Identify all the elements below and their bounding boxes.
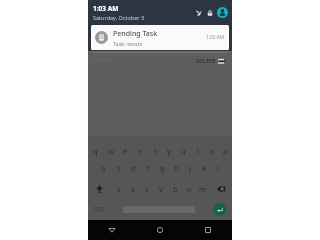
staticText: k xyxy=(202,163,207,173)
staticText: Pending Task xyxy=(113,29,158,39)
staticText: e xyxy=(123,146,128,156)
button[interactable]: Backspace xyxy=(210,178,232,199)
staticText: 1:03 AM xyxy=(93,4,119,13)
staticText: Task: tessts xyxy=(113,40,143,47)
button[interactable]: b xyxy=(168,178,182,199)
staticText: 0 xyxy=(224,141,227,146)
button[interactable]: Enter xyxy=(207,199,232,219)
staticText: h xyxy=(174,163,179,173)
button[interactable]: Recent apps xyxy=(184,220,232,240)
button[interactable]: Pending Task xyxy=(91,25,229,50)
button[interactable]: a xyxy=(96,158,111,178)
button[interactable]: d xyxy=(126,158,141,178)
staticText: o xyxy=(209,146,214,156)
staticText: q xyxy=(93,146,98,156)
staticText: v xyxy=(159,184,163,194)
staticText: g xyxy=(160,163,165,173)
staticText: m xyxy=(199,184,207,194)
button[interactable]: 6 xyxy=(162,138,176,158)
button[interactable]: j xyxy=(183,158,197,178)
staticText: . xyxy=(200,205,202,214)
button[interactable]: x xyxy=(126,178,140,199)
staticText: 9 xyxy=(210,141,213,146)
button[interactable]: 9 xyxy=(204,138,218,158)
staticText: b xyxy=(173,184,178,194)
staticText: j xyxy=(189,163,191,173)
staticText: 8 xyxy=(196,141,199,146)
staticText: 5 xyxy=(154,141,157,146)
staticText: r xyxy=(139,146,143,156)
button[interactable]: 4 xyxy=(133,138,148,158)
staticText: 4 xyxy=(140,141,143,146)
button[interactable]: z xyxy=(111,178,126,199)
button[interactable]: c xyxy=(140,178,154,199)
button[interactable]: 1 xyxy=(88,138,103,158)
button[interactable]: s xyxy=(111,158,126,178)
staticText: i xyxy=(197,146,199,156)
button[interactable]: f xyxy=(141,158,155,178)
staticText: 2 xyxy=(110,141,113,146)
button[interactable]: 5 xyxy=(148,138,162,158)
staticText: 3 xyxy=(124,141,127,146)
button[interactable]: 7 xyxy=(176,138,190,158)
button[interactable]: 2 xyxy=(103,138,118,158)
button[interactable]: m xyxy=(196,178,210,199)
other: Screen lock xyxy=(206,9,214,17)
button[interactable]: h xyxy=(169,158,183,178)
staticText: p xyxy=(223,146,228,156)
button[interactable]: Account xyxy=(217,7,228,18)
button[interactable]: n xyxy=(182,178,196,199)
staticText: Saturday, October 3 xyxy=(93,14,145,21)
staticText: c xyxy=(145,184,149,194)
button[interactable]: 0 xyxy=(218,138,232,158)
staticText: t xyxy=(154,146,157,156)
staticText: w xyxy=(108,146,114,156)
staticText: , xyxy=(116,205,118,214)
staticText: x xyxy=(131,184,135,194)
staticText: 1:02 AM xyxy=(206,34,225,41)
staticText: a xyxy=(101,163,106,173)
staticText: s xyxy=(117,163,121,173)
staticText: d xyxy=(131,163,136,173)
staticText: l xyxy=(217,163,219,173)
button[interactable]: k xyxy=(197,158,211,178)
button[interactable]: 3 xyxy=(118,138,133,158)
button[interactable]: g xyxy=(155,158,169,178)
staticText: 6 xyxy=(168,141,171,146)
other: Screenshot xyxy=(195,9,203,17)
staticText: y xyxy=(167,146,171,156)
button[interactable]: Shift xyxy=(88,178,111,199)
button[interactable]: v xyxy=(154,178,168,199)
staticText: n xyxy=(187,184,192,194)
button[interactable]: Home xyxy=(136,220,184,240)
button[interactable]: ?123 xyxy=(88,199,111,219)
staticText: 7 xyxy=(182,141,185,146)
button[interactable]: Back xyxy=(88,220,136,240)
button[interactable]: DELETE xyxy=(194,56,228,65)
staticText: f xyxy=(147,163,150,173)
staticText: z xyxy=(117,184,121,194)
staticText: DELETE xyxy=(196,57,216,64)
staticText: u xyxy=(181,146,186,156)
staticText: ?123 xyxy=(94,206,105,213)
button[interactable]: Space xyxy=(123,202,195,216)
